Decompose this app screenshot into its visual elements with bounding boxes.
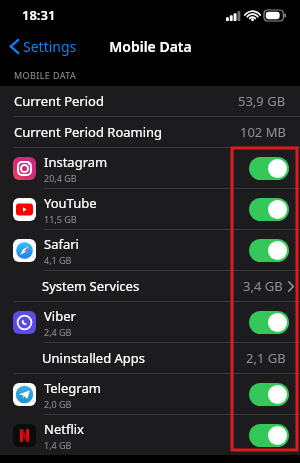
button[interactable]: YouTube bbox=[0, 189, 300, 229]
button[interactable]: Settings bbox=[0, 33, 85, 60]
button[interactable]: Telegram bbox=[0, 374, 300, 414]
staticText: 2,0 GB bbox=[44, 398, 72, 410]
button[interactable]: System Services bbox=[0, 271, 300, 302]
button[interactable]: Uninstalled Apps bbox=[0, 343, 300, 374]
staticText: Mobile Data bbox=[109, 37, 192, 56]
staticText: 2,1 GB bbox=[246, 349, 286, 367]
staticText: Telegram bbox=[44, 379, 101, 397]
button[interactable]: Current Period Roaming bbox=[0, 117, 300, 148]
staticText: 11,5 GB bbox=[44, 213, 77, 225]
button[interactable]: Instagram bbox=[0, 148, 300, 188]
button[interactable]: Toggle mobile data for app bbox=[249, 239, 289, 262]
button[interactable]: Netflix bbox=[0, 415, 300, 455]
staticText: 2,4 GB bbox=[44, 326, 72, 338]
staticText: Current Period bbox=[14, 92, 104, 110]
button[interactable]: Viber bbox=[0, 302, 300, 342]
button[interactable]: Toggle mobile data for app bbox=[249, 198, 289, 221]
button[interactable]: Current Period bbox=[0, 86, 300, 117]
staticText: Settings bbox=[23, 37, 77, 56]
staticText: System Services bbox=[42, 277, 140, 295]
staticText: 18:31 bbox=[22, 6, 56, 24]
staticText: Netflix bbox=[44, 420, 84, 438]
button[interactable]: Toggle mobile data for app bbox=[249, 311, 289, 334]
staticText: 102 MB bbox=[240, 123, 286, 141]
staticText: 20,4 GB bbox=[44, 172, 77, 184]
staticText: Instagram bbox=[44, 153, 108, 171]
button[interactable]: Toggle mobile data for app bbox=[249, 157, 289, 180]
staticText: 1,4 GB bbox=[44, 439, 72, 451]
staticText: Uninstalled Apps bbox=[42, 349, 146, 367]
button[interactable]: Safari bbox=[0, 230, 300, 270]
button[interactable]: Toggle mobile data for app bbox=[249, 424, 289, 447]
staticText: 3,4 GB bbox=[243, 277, 283, 295]
staticText: Viber bbox=[44, 307, 76, 325]
staticText: Safari bbox=[44, 235, 79, 253]
button[interactable]: Toggle mobile data for app bbox=[249, 383, 289, 406]
staticText: MOBILE DATA bbox=[14, 69, 77, 81]
staticText: Current Period Roaming bbox=[14, 123, 163, 141]
staticText: YouTube bbox=[44, 194, 97, 212]
staticText: 53,9 GB bbox=[238, 92, 286, 110]
staticText: 4,1 GB bbox=[44, 254, 72, 266]
